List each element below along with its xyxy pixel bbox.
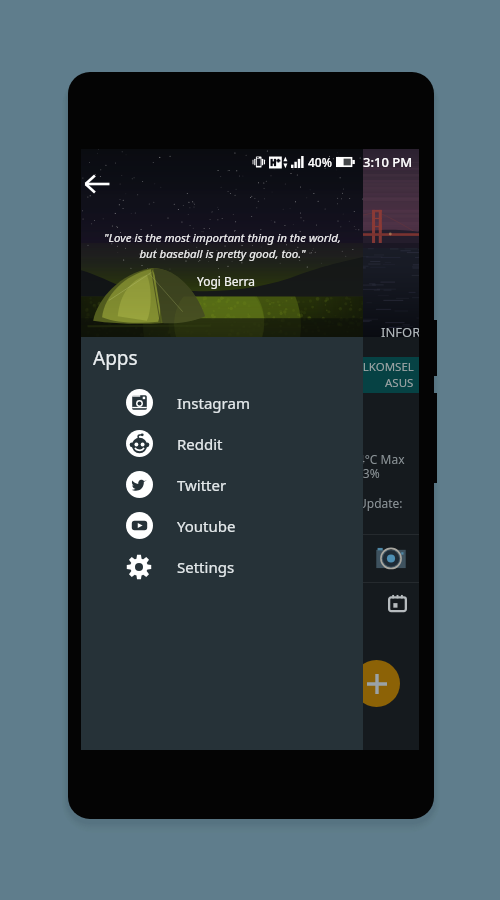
staticText: "Love is the most important thing in the…: [104, 230, 341, 262]
button[interactable]: Youtube: [81, 505, 363, 546]
button[interactable]: Reddit: [81, 423, 363, 464]
staticText: Instagram: [177, 393, 250, 413]
button[interactable]: Settings: [81, 546, 363, 587]
staticText: 34°C Max: [351, 451, 405, 467]
button[interactable]: Twitter: [81, 464, 363, 505]
staticText: Apps: [93, 345, 138, 371]
staticText: TELKOMSEL: [350, 359, 414, 375]
staticText: INFORMATION: [381, 323, 419, 341]
button[interactable]: Instagram: [81, 382, 363, 423]
staticText: 3:10 PM: [363, 153, 413, 171]
staticText: Update:: [358, 495, 403, 511]
button[interactable]: Add: [353, 660, 400, 707]
staticText: Yogi Berra: [197, 273, 256, 289]
staticText: Twitter: [177, 475, 227, 495]
staticText: Reddit: [177, 434, 223, 454]
staticText: 83%: [356, 465, 380, 481]
staticText: ASUS: [385, 375, 414, 391]
button[interactable]: Calendar: [385, 591, 409, 615]
staticText: 40%: [308, 154, 332, 170]
button[interactable]: Back: [81, 163, 118, 205]
staticText: Settings: [177, 557, 235, 577]
button[interactable]: Camera: [375, 544, 407, 572]
staticText: Youtube: [177, 516, 236, 536]
